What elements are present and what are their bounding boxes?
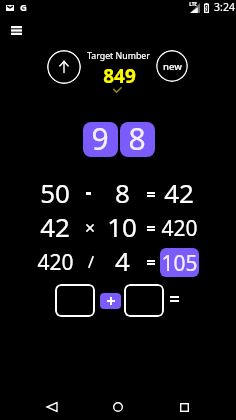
staticText: 420 [37,248,74,277]
staticText: 105 [161,249,198,278]
button[interactable]: Number tile 9 [83,122,118,157]
staticText: LTE [189,1,197,7]
button[interactable]: Menu [4,18,28,42]
button[interactable]: Back [42,397,62,417]
staticText: 849 [103,63,136,89]
button[interactable]: Operator plus [100,293,121,309]
staticText: 420 [161,214,198,243]
staticText: 3:24 [214,0,235,14]
button[interactable]: Recent apps [174,397,194,417]
staticText: 8 [128,118,146,159]
button[interactable]: Number tile 8 [120,122,155,157]
button[interactable]: Empty slot [55,284,95,317]
staticText: G [20,1,27,14]
button[interactable]: new [156,50,188,82]
staticText: 42 [40,209,70,244]
button[interactable]: Result 105 [160,248,199,277]
button[interactable]: Empty slot [124,284,164,317]
button[interactable]: Raise target [47,50,81,84]
staticText: 42 [164,175,194,210]
staticText: new [163,60,182,73]
staticText: 10 [107,209,137,244]
staticText: 8 [115,175,130,210]
staticText: 4 [115,243,130,278]
staticText: 9 [91,118,109,159]
staticText: Target Number [87,50,150,62]
button[interactable]: Home [108,397,128,417]
staticText: 50 [40,175,70,210]
